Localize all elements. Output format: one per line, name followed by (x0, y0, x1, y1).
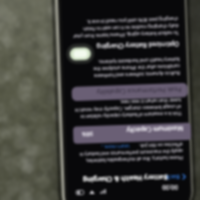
button[interactable]: Battery Health and Charging (0, 0, 200, 200)
